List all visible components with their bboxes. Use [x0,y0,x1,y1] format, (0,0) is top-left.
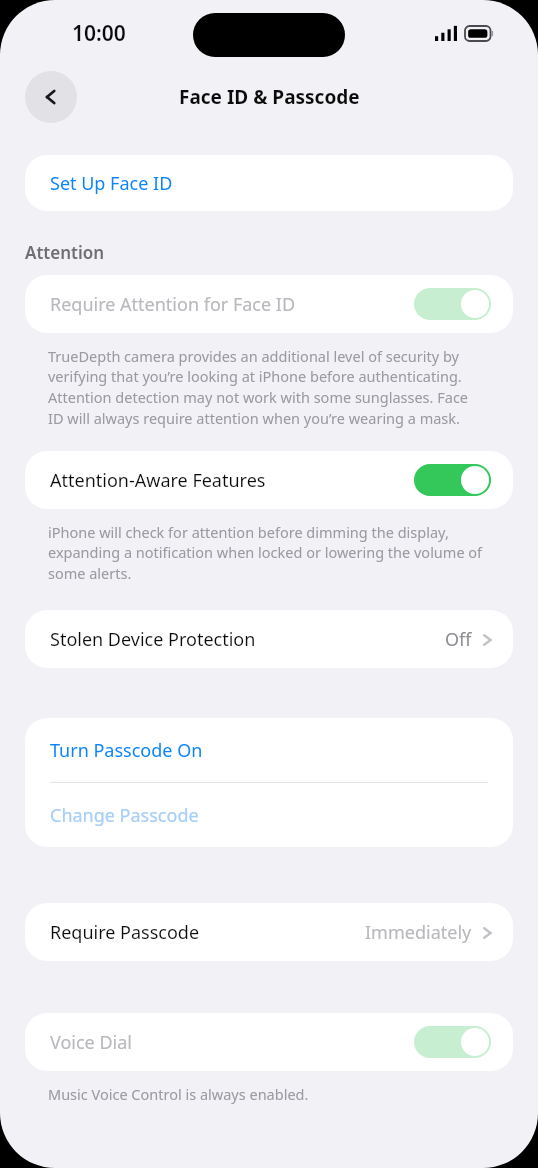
button[interactable]: Require Attention for Face ID [25,275,513,333]
staticText: Immediately [365,920,472,945]
button[interactable]: Set Up Face ID [25,155,513,211]
button[interactable]: Stolen Device Protection [25,610,513,668]
staticText: Attention-Aware Features [50,468,266,493]
button[interactable]: Change Passcode [25,783,513,847]
staticText: Stolen Device Protection [50,627,256,652]
staticText: Face ID & Passcode [179,84,360,110]
staticText: Set Up Face ID [50,171,173,196]
staticText: TrueDepth camera provides an additional … [48,346,483,429]
staticText: Off [445,627,472,652]
staticText: Voice Dial [50,1030,132,1055]
button[interactable]: Back [25,71,77,123]
staticText: Require Passcode [50,920,200,945]
button[interactable]: Turn Passcode On [25,718,513,782]
staticText: Change Passcode [50,803,199,828]
button[interactable]: Require Passcode [25,903,513,961]
staticText: Music Voice Control is always enabled. [48,1084,483,1104]
button[interactable]: Voice Dial [25,1013,513,1071]
staticText: Turn Passcode On [50,738,203,763]
staticText: Attention [25,241,105,264]
staticText: Require Attention for Face ID [50,292,296,317]
staticText: iPhone will check for attention before d… [48,522,483,584]
button[interactable]: Attention-Aware Features [25,451,513,509]
staticText: 10:00 [72,19,126,48]
